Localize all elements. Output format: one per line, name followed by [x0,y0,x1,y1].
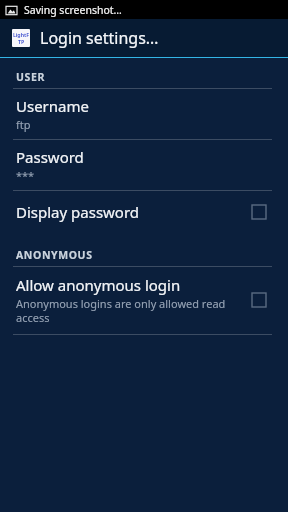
staticText: Password [16,147,84,167]
button[interactable]: Display password [246,199,272,225]
staticText: ftp [16,117,31,132]
staticText: USER [16,70,45,84]
staticText: Anonymous logins are only allowed read a… [16,296,238,325]
button[interactable]: Password [0,140,288,190]
staticText: Login settings… [40,27,159,49]
staticText: Saving screenshot… [24,3,122,17]
staticText: Allow anonymous login [16,275,181,295]
staticText: Display password [16,202,140,222]
button[interactable]: Allow anonymous login [0,267,288,334]
button[interactable]: Allow anonymous login [246,287,272,313]
button[interactable]: Display password [0,191,288,234]
button[interactable]: Username [0,89,288,139]
staticText: *** [16,168,35,183]
other: Screenshot [6,5,17,16]
staticText: ANONYMOUS [16,248,93,262]
staticText: Username [16,96,89,116]
staticText: LightFTP [12,31,30,45]
